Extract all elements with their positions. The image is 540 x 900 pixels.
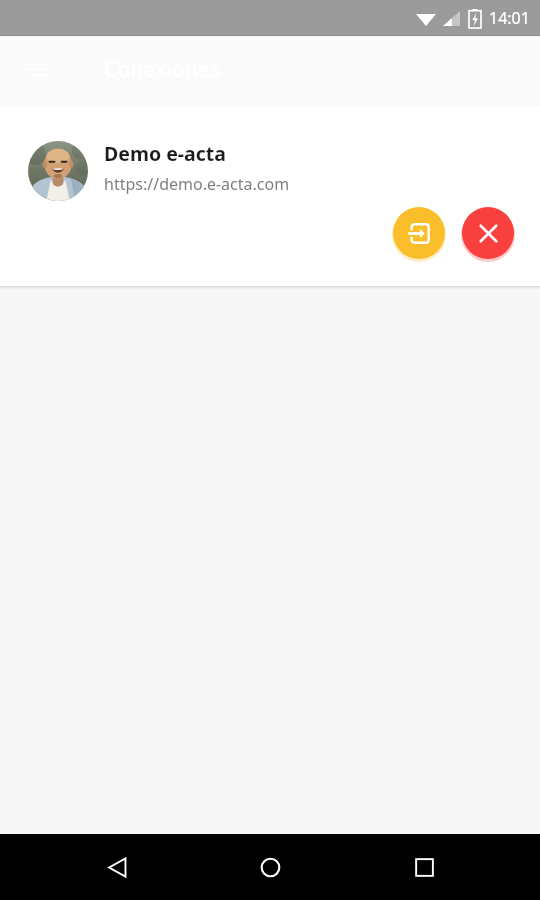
button[interactable]: Home bbox=[233, 834, 307, 900]
button[interactable]: Back bbox=[80, 834, 154, 900]
button[interactable]: Open connection bbox=[393, 207, 445, 259]
button[interactable]: Delete connection bbox=[462, 207, 514, 259]
button[interactable]: Demo e-acta bbox=[0, 105, 540, 286]
staticText: https://demo.e-acta.com bbox=[104, 173, 290, 195]
staticText: 14:01 bbox=[489, 7, 530, 29]
staticText: Demo e-acta bbox=[104, 140, 226, 167]
button[interactable]: Recents bbox=[387, 834, 461, 900]
